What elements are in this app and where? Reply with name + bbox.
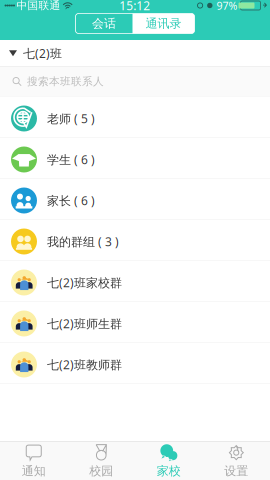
button[interactable]: 老师 ( 5 ): [0, 96, 270, 137]
staticText: 七(2)班家校群: [47, 274, 122, 290]
button[interactable]: 家长 ( 6 ): [0, 178, 270, 219]
button[interactable]: 学生 ( 6 ): [0, 137, 270, 178]
staticText: 设置: [224, 464, 248, 478]
staticText: 家长 ( 6 ): [47, 192, 95, 208]
staticText: 通知: [22, 464, 46, 478]
staticText: 中国联通: [16, 0, 60, 12]
staticText: 七(2)班教师群: [47, 356, 122, 372]
staticText: 97%: [216, 0, 237, 13]
staticText: 搜索本班联系人: [27, 75, 104, 88]
button[interactable]: 家校: [135, 444, 202, 478]
staticText: 校园: [89, 464, 113, 478]
button[interactable]: 七(2)班教师群: [0, 342, 270, 383]
button[interactable]: 七(2)班家校群: [0, 260, 270, 301]
staticText: 通讯录: [145, 16, 181, 31]
staticText: 家校: [157, 464, 181, 478]
button[interactable]: 七(2)班师生群: [0, 301, 270, 342]
staticText: 会话: [92, 16, 116, 31]
button[interactable]: 会话: [75, 13, 132, 33]
staticText: 七(2)班: [23, 45, 62, 61]
button[interactable]: 通讯录: [132, 13, 194, 33]
staticText: 学生 ( 6 ): [47, 151, 95, 167]
button[interactable]: 通知: [0, 444, 67, 478]
staticText: 我的群组 ( 3 ): [47, 233, 119, 249]
button[interactable]: 校园: [67, 444, 135, 478]
button[interactable]: 设置: [202, 444, 270, 478]
staticText: 七(2)班师生群: [47, 315, 122, 331]
staticText: 老师 ( 5 ): [47, 110, 95, 126]
staticText: 15:12: [119, 0, 150, 13]
button[interactable]: 我的群组 ( 3 ): [0, 219, 270, 260]
